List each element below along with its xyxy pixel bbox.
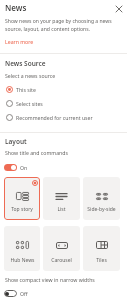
button[interactable]: Close <box>112 2 125 15</box>
button[interactable]: Learn more <box>5 38 34 45</box>
button[interactable]: Carousel <box>43 226 80 271</box>
button[interactable]: Tiles <box>83 226 120 271</box>
button[interactable]: This site <box>2 82 125 96</box>
button[interactable]: List <box>43 177 80 220</box>
staticText: Hub News <box>10 257 35 264</box>
button[interactable]: Recommended for current user <box>2 110 125 124</box>
staticText: Select sites <box>16 100 43 107</box>
staticText: Side-by-side <box>87 206 116 213</box>
staticText: News Source <box>5 59 46 68</box>
staticText: Show news on your page by choosing a new… <box>5 18 112 32</box>
staticText: Learn more <box>5 38 34 45</box>
staticText: Top story <box>11 206 33 213</box>
staticText: Show compact view in narrow widths <box>5 276 95 283</box>
button[interactable]: Top story <box>4 177 40 220</box>
staticText: Carousel <box>51 257 72 264</box>
staticText: On <box>20 164 28 171</box>
button[interactable]: Off <box>0 290 28 297</box>
staticText: Off <box>20 290 28 297</box>
staticText: This site <box>16 86 36 93</box>
button[interactable]: Select sites <box>2 96 125 110</box>
staticText: Show title and commands <box>5 149 68 156</box>
button[interactable]: Hub News <box>4 226 40 271</box>
staticText: Recommended for current user <box>16 114 93 121</box>
button[interactable]: Side-by-side <box>83 177 120 220</box>
staticText: Tiles <box>96 257 107 264</box>
staticText: Layout <box>5 137 27 146</box>
button[interactable]: On <box>0 164 28 171</box>
staticText: Select a news source <box>5 72 56 79</box>
staticText: List <box>57 206 66 213</box>
staticText: News <box>5 2 27 13</box>
